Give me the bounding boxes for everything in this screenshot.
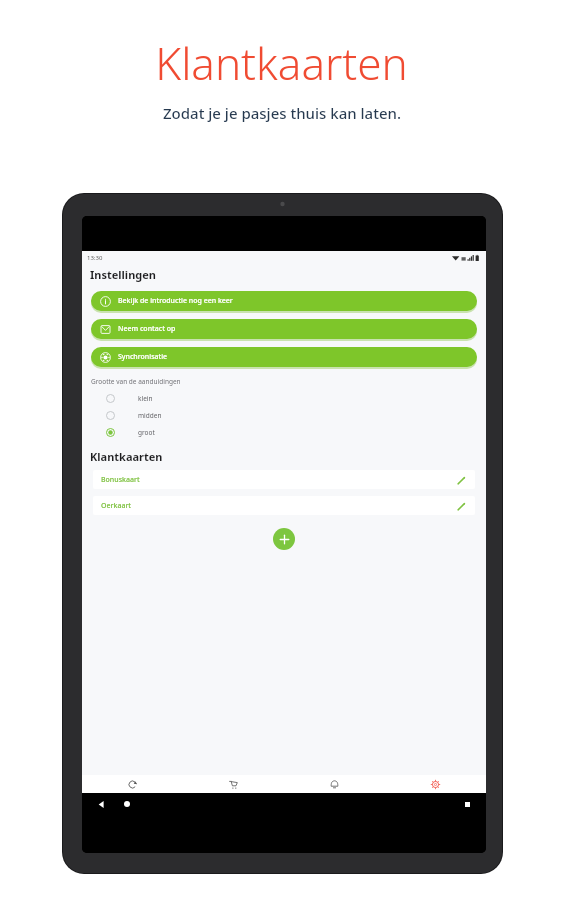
button[interactable]: groot (82, 424, 486, 441)
button[interactable]: klein (82, 390, 486, 407)
button[interactable]: Bewerk Oerkaart (455, 500, 467, 512)
button[interactable]: Meldingen (284, 775, 385, 793)
staticText: 13:30 (87, 254, 103, 262)
button[interactable]: Synchronisatie (91, 347, 477, 367)
button[interactable]: Instellingen (385, 775, 486, 793)
staticText: klein (138, 394, 153, 403)
button[interactable]: midden (82, 407, 486, 424)
staticText: midden (138, 411, 162, 420)
staticText: Klantkaarten (155, 33, 408, 93)
staticText: Bonuskaart (101, 475, 140, 485)
button[interactable]: Vernieuwen (82, 775, 183, 793)
staticText: groot (138, 428, 155, 437)
staticText: Synchronisatie (118, 352, 168, 362)
button[interactable]: Bewerk Bonuskaart (455, 474, 467, 486)
button[interactable]: Recent (460, 797, 474, 811)
button[interactable]: Oerkaart (93, 496, 475, 515)
button[interactable]: Klantkaart toevoegen (273, 528, 295, 550)
staticText: Klantkaarten (90, 449, 163, 464)
staticText: Grootte van de aanduidingen (91, 377, 181, 386)
button[interactable]: Neem contact op (91, 319, 477, 339)
button[interactable]: Winkelwagen (183, 775, 284, 793)
button[interactable]: Bonuskaart (93, 470, 475, 489)
button[interactable]: Start (120, 797, 134, 811)
staticText: Neem contact op (118, 324, 176, 334)
staticText: Zodat je je pasjes thuis kan laten. (163, 103, 401, 123)
staticText: Instellingen (90, 267, 156, 282)
button[interactable]: Terug (94, 797, 108, 811)
staticText: Oerkaart (101, 501, 132, 511)
button[interactable]: Bekijk de introductie nog een keer (91, 291, 477, 311)
staticText: Bekijk de introductie nog een keer (118, 296, 233, 306)
